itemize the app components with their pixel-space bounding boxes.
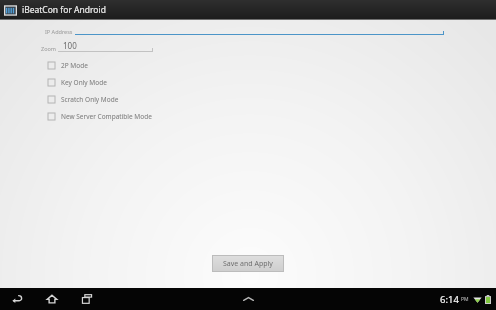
staticText: 100 (63, 40, 77, 51)
staticText: IP Address (45, 28, 73, 35)
staticText: Save and Apply (223, 259, 273, 269)
button[interactable]: Save and Apply (212, 255, 284, 272)
button[interactable]: Back (6, 288, 28, 310)
staticText: Zoom (41, 45, 56, 52)
staticText: PM (461, 296, 469, 303)
button[interactable]: 2P Mode (0, 57, 496, 74)
button[interactable]: Show navigation bar (234, 288, 262, 310)
staticText: Key Only Mode (61, 78, 107, 87)
staticText: iBeatCon for Android (22, 4, 106, 16)
staticText: New Server Compatible Mode (61, 112, 152, 121)
staticText: 6:14 (440, 293, 459, 306)
button[interactable]: Key Only Mode (0, 74, 496, 91)
button[interactable]: Recent apps (76, 288, 98, 310)
button[interactable]: New Server Compatible Mode (0, 108, 496, 125)
staticText: 2P Mode (61, 61, 88, 70)
staticText: Scratch Only Mode (61, 95, 119, 104)
button[interactable]: Scratch Only Mode (0, 91, 496, 108)
button[interactable]: Home (41, 288, 63, 310)
